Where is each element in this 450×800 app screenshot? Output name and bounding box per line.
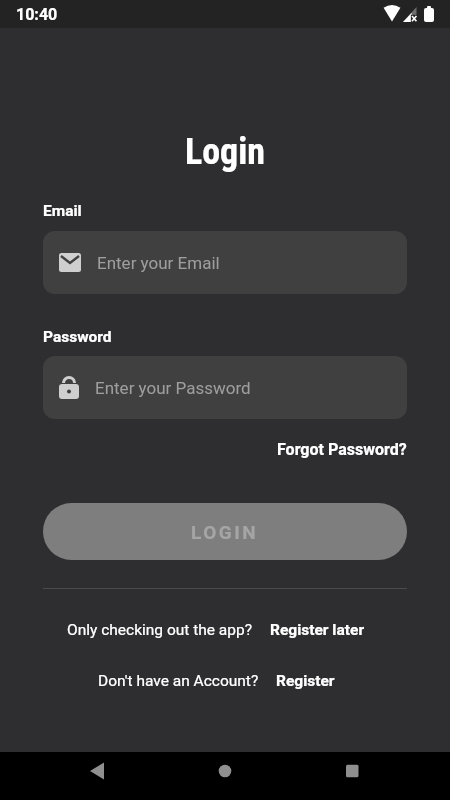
staticText: Only checking out the app? xyxy=(67,621,253,639)
button[interactable] xyxy=(150,752,300,800)
staticText: Register later xyxy=(270,621,365,639)
staticText: Enter your Email xyxy=(97,253,220,273)
button[interactable]: Register xyxy=(276,672,335,690)
button[interactable]: Register later xyxy=(270,621,365,639)
staticText: Password xyxy=(43,328,112,346)
staticText: 10:40 xyxy=(16,5,58,24)
staticText: Enter your Password xyxy=(95,378,251,398)
button[interactable]: Forgot Password? xyxy=(277,440,407,459)
staticText: Don't have an Account? xyxy=(98,672,259,690)
button[interactable]: Enter your Email xyxy=(43,231,407,294)
button[interactable]: Enter your Password xyxy=(43,356,407,419)
button[interactable]: LOGIN xyxy=(43,503,407,560)
staticText: Login xyxy=(43,131,407,173)
button[interactable] xyxy=(0,752,150,800)
staticText: Forgot Password? xyxy=(277,440,407,459)
staticText: Email xyxy=(43,202,82,220)
button[interactable] xyxy=(300,752,450,800)
staticText: Register xyxy=(276,672,335,690)
staticText: LOGIN xyxy=(191,521,259,543)
